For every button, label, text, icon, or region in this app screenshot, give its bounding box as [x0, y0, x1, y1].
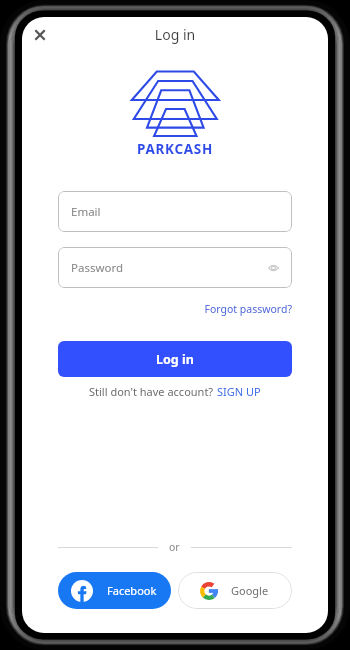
- staticText: Forgot password?: [192, 302, 292, 316]
- button[interactable]: SIGN UP: [217, 384, 261, 399]
- staticText: Facebook: [107, 583, 157, 598]
- staticText: Password: [71, 260, 124, 276]
- staticText: Log in: [22, 25, 328, 44]
- staticText: Log in: [156, 351, 194, 368]
- staticText: Still don't have account?: [89, 384, 217, 399]
- button[interactable]: Close: [26, 21, 54, 49]
- button[interactable]: Forgot password?: [192, 302, 292, 316]
- button[interactable]: Password: [58, 247, 292, 288]
- button[interactable]: Log in: [58, 341, 292, 377]
- staticText: PARKCASH: [22, 140, 328, 158]
- staticText: Email: [71, 204, 101, 220]
- other: Show password: [266, 261, 280, 275]
- button[interactable]: Email: [58, 191, 292, 232]
- staticText: or: [169, 540, 180, 554]
- button[interactable]: Google: [178, 572, 292, 609]
- button[interactable]: Facebook: [58, 572, 171, 609]
- staticText: Google: [231, 583, 269, 598]
- staticText: SIGN UP: [217, 384, 261, 399]
